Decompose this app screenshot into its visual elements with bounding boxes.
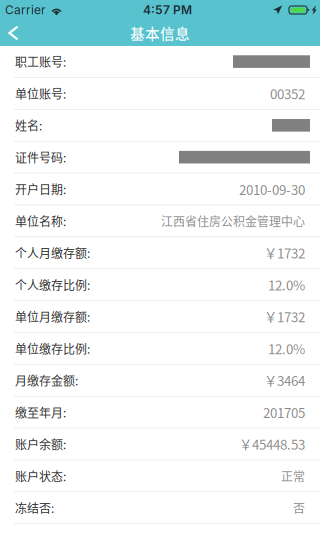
staticText: 4:57 PM xyxy=(143,3,192,17)
staticText: ￥45448.53 xyxy=(239,434,305,454)
staticText: 单位名称: xyxy=(15,212,66,230)
staticText: 姓名: xyxy=(15,117,42,134)
staticText: 冻结否: xyxy=(15,499,54,516)
staticText: 基本信息 xyxy=(130,22,190,44)
staticText: 12.0% xyxy=(268,339,305,358)
staticText: 单位月缴存额: xyxy=(15,308,90,325)
staticText: ￥1732 xyxy=(264,307,305,326)
button[interactable]: Back xyxy=(0,21,29,45)
staticText: 2010-09-30 xyxy=(239,179,305,199)
staticText: 缴至年月: xyxy=(15,403,66,421)
staticText: 正常 xyxy=(281,467,305,485)
staticText: 江西省住房公积金管理中心 xyxy=(161,212,305,230)
staticText: ￥3464 xyxy=(264,371,305,390)
staticText: ￥1732 xyxy=(264,243,305,262)
staticText: 账户状态: xyxy=(15,467,66,485)
staticText: 00352 xyxy=(270,84,305,103)
staticText: 个人月缴存额: xyxy=(15,244,90,261)
staticText: 201705 xyxy=(263,402,305,422)
staticText: 月缴存金额: xyxy=(15,372,78,389)
staticText: 账户余额: xyxy=(15,435,66,453)
staticText: 职工账号: xyxy=(15,53,66,70)
staticText: Carrier xyxy=(5,3,46,17)
staticText: 否 xyxy=(293,499,305,516)
staticText: 证件号码: xyxy=(15,148,66,166)
staticText: 单位账号: xyxy=(15,85,66,102)
staticText: 12.0% xyxy=(268,275,305,294)
staticText: 单位缴存比例: xyxy=(15,340,90,357)
staticText: 开户日期: xyxy=(15,180,66,198)
staticText: 个人缴存比例: xyxy=(15,276,90,293)
